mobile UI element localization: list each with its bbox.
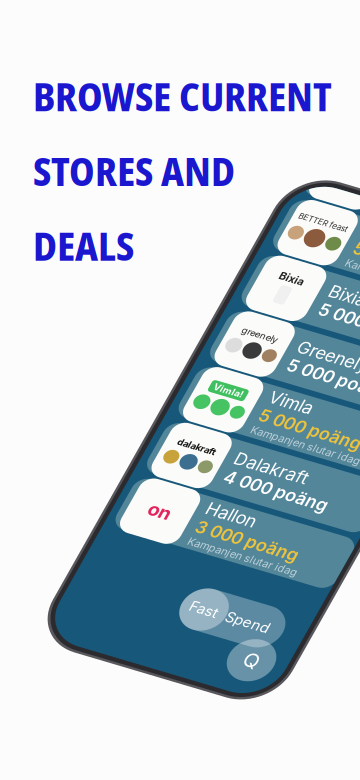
staticText: Greenely (91, 163, 164, 184)
staticText: STORES AND (33, 145, 235, 197)
staticText: Vimla (91, 221, 136, 242)
button[interactable]: Search (185, 473, 231, 519)
staticText: greenely (32, 168, 69, 179)
staticText: DEALS (33, 219, 134, 272)
staticText: Kampanjen slutar idag (91, 390, 205, 403)
staticText: 5 000 poäng (91, 184, 197, 205)
button[interactable]: dalakraft (14, 281, 244, 343)
staticText: Vimla! (36, 232, 66, 243)
button[interactable]: greenely (14, 153, 244, 215)
button[interactable]: BETTER feast (14, 25, 244, 87)
button[interactable]: Bixia (14, 89, 244, 151)
staticText: Bixia (91, 99, 129, 120)
staticText: Q (200, 484, 215, 508)
button[interactable]: Vimla! (14, 217, 244, 279)
staticText: BROWSE CURRENT (33, 70, 332, 123)
button[interactable]: on (14, 345, 244, 407)
staticText: Fast (125, 451, 154, 469)
staticText: Bixia (38, 102, 63, 115)
button[interactable]: Fast (117, 437, 222, 483)
staticText: 5 000 poäng (91, 241, 197, 262)
staticText: 3 000 poäng (91, 369, 197, 390)
staticText: Spend (163, 451, 208, 469)
